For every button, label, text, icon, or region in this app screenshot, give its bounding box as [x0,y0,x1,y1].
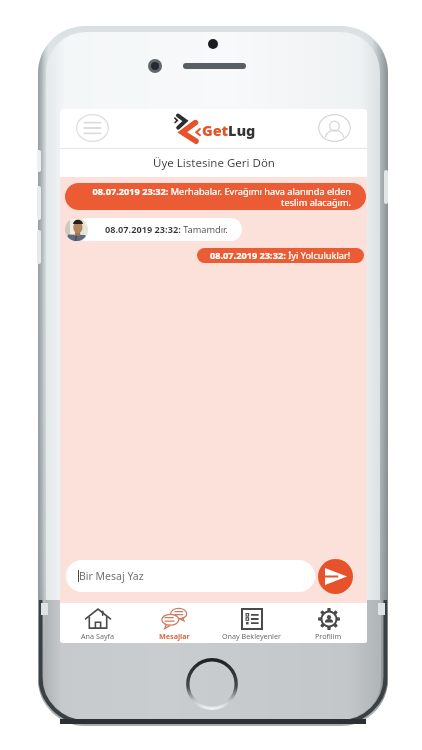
staticText: Ana Sayfa [81,631,115,641]
button[interactable]: Mesajlar [136,603,213,643]
button[interactable]: 08.07.2019 23:32: Tamamdır. [76,218,242,241]
button[interactable]: Profile [318,114,351,142]
staticText: Üye Listesine Geri Dön [153,155,275,171]
button[interactable]: Profilim [290,603,367,643]
button[interactable]: 08.07.2019 23:32: Merhabalar. Evrağımı h… [65,183,366,210]
button[interactable]: Onay Bekleyenler [213,603,290,643]
button[interactable]: Menu [76,114,109,142]
staticText: Bir Mesaj Yaz [79,569,144,583]
staticText: GetLug [202,120,256,140]
button[interactable]: Ana Sayfa [60,603,136,643]
button[interactable]: Bir Mesaj Yaz [66,560,315,592]
button[interactable]: Send [318,559,353,594]
staticText: Onay Bekleyenler [222,631,281,641]
staticText: 08.07.2019 23:32: İyi Yolculuklar! [210,249,351,262]
button[interactable]: 08.07.2019 23:32: İyi Yolculuklar! [197,248,364,263]
staticText: Profilim [315,631,342,641]
staticText: 08.07.2019 23:32: Merhabalar. Evrağımı h… [80,185,351,209]
staticText: Mesajlar [159,631,190,641]
staticText: 08.07.2019 23:32: Tamamdır. [105,223,228,236]
